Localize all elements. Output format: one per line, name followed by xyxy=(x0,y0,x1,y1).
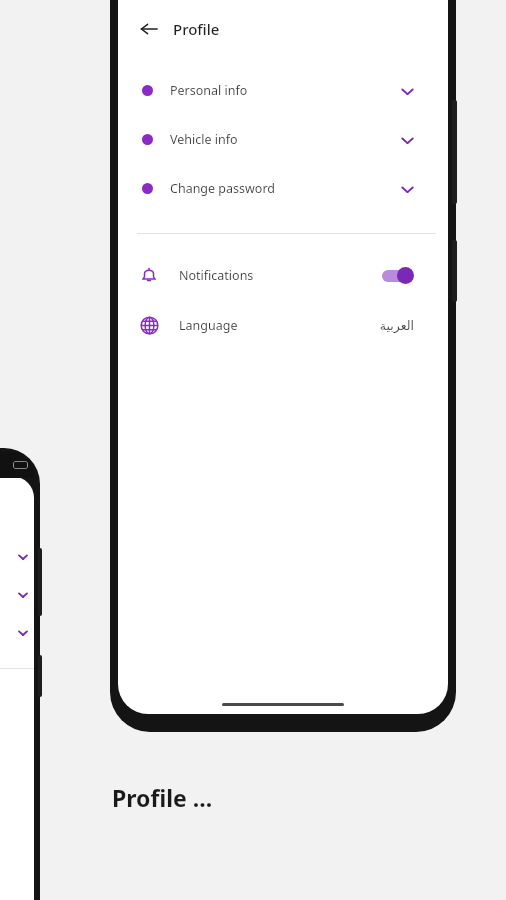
staticText: Notifications xyxy=(179,267,254,284)
button[interactable]: Notifications toggle xyxy=(382,267,414,284)
staticText: العربية xyxy=(379,318,414,333)
button[interactable]: Vehicle info xyxy=(118,115,448,164)
staticText: Profile xyxy=(173,19,220,39)
button[interactable]: Change password xyxy=(118,164,448,213)
button[interactable]: Notifications xyxy=(118,255,448,295)
staticText: Vehicle info xyxy=(170,131,238,148)
button[interactable]: Language xyxy=(118,305,448,345)
staticText: Personal info xyxy=(170,82,248,99)
staticText: Language xyxy=(179,317,238,334)
button[interactable]: Back xyxy=(137,17,161,41)
button[interactable]: Personal info xyxy=(118,66,448,115)
staticText: Profile ... xyxy=(112,782,213,813)
staticText: Change password xyxy=(170,180,276,197)
